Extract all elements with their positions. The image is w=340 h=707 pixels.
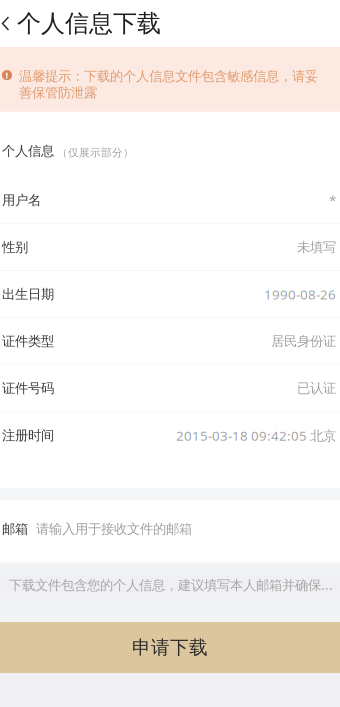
staticText: 性别 bbox=[2, 239, 28, 255]
button[interactable]: 证件号码 bbox=[0, 365, 340, 412]
staticText: 申请下载 bbox=[132, 636, 208, 659]
staticText: * bbox=[329, 191, 336, 209]
button[interactable]: 返回 bbox=[0, 0, 17, 47]
staticText: 证件类型 bbox=[2, 333, 54, 349]
button[interactable]: 注册时间 bbox=[0, 412, 340, 459]
staticText: 2015-03-18 09:42:05 北京 bbox=[176, 427, 336, 444]
staticText: 用户名 bbox=[2, 192, 41, 208]
staticText: 居民身份证 bbox=[271, 333, 336, 349]
button[interactable]: 出生日期 bbox=[0, 271, 340, 318]
staticText: 个人信息 bbox=[2, 143, 54, 159]
staticText: ! bbox=[5, 69, 8, 81]
staticText: 温馨提示：下载的个人信息文件包含敏感信息，请妥善保管防泄露 bbox=[19, 68, 318, 101]
staticText: 下载文件包含您的个人信息，建议填写本人邮箱并确保可正常接收 bbox=[9, 576, 340, 593]
button[interactable]: 用户名 bbox=[0, 177, 340, 224]
button[interactable]: 申请下载 bbox=[0, 622, 340, 673]
staticText: 注册时间 bbox=[2, 427, 54, 444]
staticText: 已认证 bbox=[297, 380, 336, 396]
staticText: 个人信息下载 bbox=[17, 9, 161, 38]
staticText: 邮箱 bbox=[2, 521, 28, 537]
staticText: 证件号码 bbox=[2, 380, 54, 396]
staticText: 出生日期 bbox=[2, 286, 54, 302]
staticText: 请输入用于接收文件的邮箱 bbox=[36, 521, 192, 537]
button[interactable]: 性别 bbox=[0, 224, 340, 271]
staticText: 未填写 bbox=[297, 239, 336, 255]
staticText: 1990-08-26 bbox=[264, 285, 336, 303]
button[interactable]: 证件类型 bbox=[0, 318, 340, 365]
staticText: （仅展示部分） bbox=[57, 146, 134, 159]
button[interactable]: 邮箱 bbox=[0, 501, 340, 565]
